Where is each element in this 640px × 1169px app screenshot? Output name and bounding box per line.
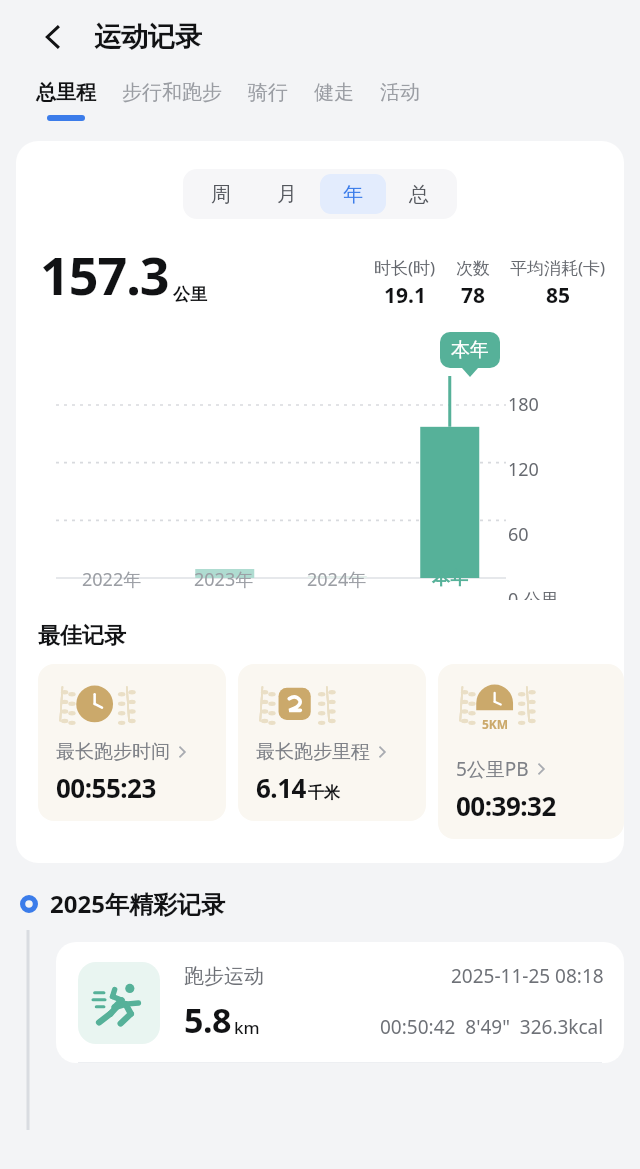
staticText: 120 <box>508 457 539 482</box>
staticText: 180 <box>508 392 539 417</box>
staticText: 2023年 <box>194 567 254 592</box>
staticText: 00:39:32 <box>456 788 556 823</box>
staticText: 00:50:42 8'49" 326.3kcal <box>380 1014 604 1040</box>
staticText: 千米 <box>308 783 340 803</box>
staticText: 跑步运动 <box>184 964 264 989</box>
staticText: 次数 <box>456 258 490 279</box>
staticText: 年 <box>343 182 363 207</box>
staticText: 周 <box>211 182 231 207</box>
staticText: 6.14 <box>256 770 306 805</box>
button[interactable]: 年 <box>320 174 386 214</box>
staticText: 19.1 <box>384 281 426 310</box>
button[interactable]: 最长跑步里程 <box>238 664 426 821</box>
staticText: 最长跑步时间 <box>56 740 170 764</box>
staticText: 步行和跑步 <box>122 80 222 105</box>
staticText: 本年 <box>432 567 468 590</box>
staticText: 时长(时) <box>374 256 436 279</box>
staticText: 公里 <box>173 284 207 305</box>
staticText: 骑行 <box>248 80 288 105</box>
staticText: 最长跑步里程 <box>256 740 370 764</box>
button[interactable]: 跑步运动 <box>56 942 624 1063</box>
staticText: 5KM <box>482 716 509 732</box>
staticText: 月 <box>277 182 297 207</box>
staticText: 2022年 <box>82 567 142 592</box>
staticText: km <box>234 1016 260 1039</box>
button[interactable]: Back <box>30 14 76 60</box>
staticText: 157.3 <box>40 239 169 310</box>
staticText: 运动记录 <box>94 20 202 54</box>
button[interactable]: 5KM <box>438 664 624 839</box>
staticText: 5公里PB <box>456 756 529 782</box>
button[interactable]: 总里程 <box>26 74 106 127</box>
staticText: 5.8 <box>184 997 231 1043</box>
staticText: 平均消耗(卡) <box>510 256 606 279</box>
staticText: 60 <box>508 522 529 547</box>
staticText: 2025年精彩记录 <box>50 887 225 920</box>
staticText: 最佳记录 <box>38 622 126 650</box>
button[interactable]: 最长跑步时间 <box>38 664 226 821</box>
staticText: 本年 <box>451 338 489 362</box>
staticText: 00:55:23 <box>56 770 156 805</box>
button[interactable]: 健走 <box>304 74 364 127</box>
button[interactable]: 月 <box>254 174 320 214</box>
button[interactable]: 周 <box>188 174 254 214</box>
staticText: 总里程 <box>36 80 96 105</box>
button[interactable]: 活动 <box>370 74 430 127</box>
button[interactable]: 总 <box>386 174 452 214</box>
button[interactable]: 骑行 <box>238 74 298 127</box>
staticText: 2025-11-25 08:18 <box>451 963 604 989</box>
staticText: 健走 <box>314 80 354 105</box>
staticText: 78 <box>461 281 486 310</box>
staticText: 0 公里 <box>508 587 559 600</box>
staticText: 活动 <box>380 80 420 105</box>
button[interactable]: 步行和跑步 <box>112 74 232 127</box>
staticText: 总 <box>409 182 429 207</box>
staticText: 85 <box>546 281 571 310</box>
staticText: 2024年 <box>307 567 367 592</box>
